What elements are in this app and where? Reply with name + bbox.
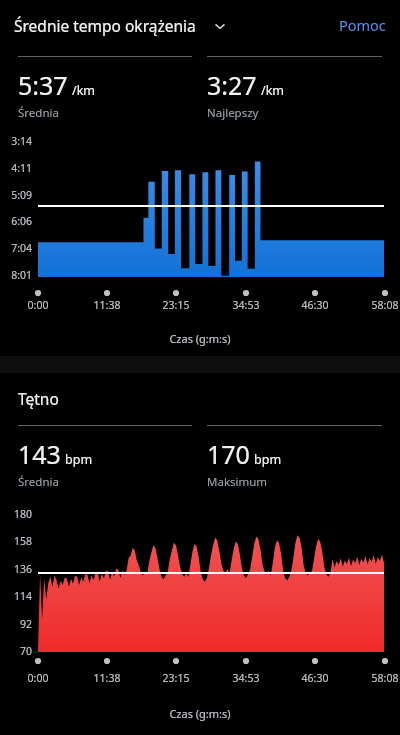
staticText: 0:00 bbox=[8, 671, 68, 685]
staticText: Średnie tempo okrążenia bbox=[14, 15, 196, 36]
staticText: 0:00 bbox=[8, 298, 68, 312]
staticText: Tętno bbox=[18, 388, 59, 409]
staticText: 8:01 bbox=[0, 268, 32, 282]
button[interactable]: 170 bbox=[207, 425, 382, 490]
staticText: 3:27 bbox=[207, 68, 257, 102]
staticText: /km bbox=[261, 82, 285, 99]
staticText: 11:38 bbox=[77, 298, 137, 312]
staticText: 92 bbox=[0, 617, 32, 631]
staticText: 5:37 bbox=[18, 68, 68, 102]
staticText: 58:08 bbox=[355, 298, 400, 312]
button[interactable]: 3:27 bbox=[207, 56, 382, 121]
staticText: 170 bbox=[207, 437, 250, 471]
staticText: 11:38 bbox=[77, 671, 137, 685]
staticText: 46:30 bbox=[285, 298, 345, 312]
staticText: bpm bbox=[65, 451, 93, 468]
staticText: 114 bbox=[0, 589, 32, 603]
staticText: 136 bbox=[0, 562, 32, 576]
staticText: 34:53 bbox=[216, 298, 276, 312]
staticText: 58:08 bbox=[355, 671, 400, 685]
staticText: 3:14 bbox=[0, 134, 32, 148]
button[interactable]: 5:37 bbox=[18, 56, 192, 121]
button[interactable]: 143 bbox=[18, 425, 192, 490]
staticText: 4:11 bbox=[0, 161, 32, 175]
staticText: 23:15 bbox=[146, 671, 206, 685]
staticText: bpm bbox=[254, 451, 282, 468]
staticText: 158 bbox=[0, 534, 32, 548]
button[interactable]: Średnie tempo okrążenia bbox=[14, 15, 234, 36]
staticText: Najlepszy bbox=[207, 105, 259, 121]
staticText: Średnia bbox=[18, 105, 59, 121]
staticText: Średnia bbox=[18, 474, 59, 490]
staticText: 70 bbox=[0, 644, 32, 658]
staticText: 5:09 bbox=[0, 188, 32, 202]
staticText: Pomoc bbox=[339, 15, 386, 35]
staticText: 143 bbox=[18, 437, 61, 471]
button[interactable]: Tętno bbox=[18, 388, 59, 409]
staticText: 23:15 bbox=[146, 298, 206, 312]
staticText: 34:53 bbox=[216, 671, 276, 685]
staticText: Czas (g:m:s) bbox=[0, 706, 400, 721]
staticText: /km bbox=[72, 82, 96, 99]
staticText: 6:06 bbox=[0, 214, 32, 228]
staticText: Maksimum bbox=[207, 474, 268, 490]
staticText: 180 bbox=[0, 507, 32, 521]
button[interactable]: Pomoc bbox=[325, 7, 400, 43]
staticText: 7:04 bbox=[0, 241, 32, 255]
staticText: Czas (g:m:s) bbox=[0, 331, 400, 346]
staticText: 46:30 bbox=[285, 671, 345, 685]
other: Expand bbox=[212, 18, 228, 34]
